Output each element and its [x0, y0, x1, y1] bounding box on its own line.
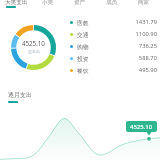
button[interactable]: 购物 [70, 40, 157, 52]
staticText: 投资 [77, 55, 89, 62]
staticText: 商家 [138, 0, 150, 6]
staticText: 交通 [77, 31, 89, 38]
staticText: 医教 [77, 19, 89, 26]
button[interactable]: 资产 [64, 0, 96, 10]
button[interactable]: 投资 [70, 52, 157, 64]
staticText: 4525.10 [130, 123, 153, 131]
staticText: 小类 [42, 0, 54, 6]
button[interactable]: 商家 [128, 0, 160, 10]
button[interactable]: 4525.10 [126, 121, 157, 132]
staticText: 逐月支出 [8, 91, 32, 99]
staticText: 1431.79 [135, 18, 157, 26]
button[interactable]: 餐饮 [70, 64, 157, 76]
staticText: 资产 [74, 0, 86, 6]
staticText: 736.25 [138, 42, 157, 50]
button[interactable]: 成员 [96, 0, 128, 10]
staticText: 588.70 [138, 54, 157, 62]
staticText: 餐饮 [77, 67, 89, 74]
staticText: 495.90 [138, 66, 157, 74]
button[interactable]: 逐月支出 [8, 91, 32, 103]
staticText: 成员 [106, 0, 118, 6]
button[interactable]: 大类支出 [0, 0, 32, 10]
staticText: 大类支出 [5, 0, 28, 6]
button[interactable]: 小类 [32, 0, 64, 10]
staticText: 1100.90 [135, 30, 157, 38]
button[interactable]: 医教 [70, 16, 157, 28]
button[interactable]: 交通 [70, 28, 157, 40]
staticText: 4525.10 [22, 39, 45, 47]
staticText: 总支出 [28, 49, 40, 54]
staticText: 购物 [77, 43, 89, 50]
